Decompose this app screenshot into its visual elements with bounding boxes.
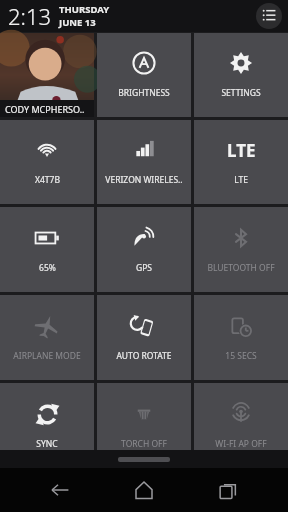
staticText: LTE — [227, 139, 256, 162]
staticText: SETTINGS — [221, 87, 261, 99]
button[interactable]: 15 SECS — [194, 295, 288, 380]
button[interactable]: Edit quick settings — [256, 3, 282, 29]
button[interactable]: WI-FI AP OFF — [194, 383, 288, 468]
button[interactable]: 65% — [0, 207, 94, 292]
button[interactable]: LTE — [194, 120, 288, 204]
button[interactable]: AUTO ROTATE — [97, 295, 191, 380]
staticText: AUTO ROTATE — [116, 350, 172, 362]
staticText: 15 SECS — [225, 350, 257, 362]
button[interactable]: BRIGHTNESS — [97, 33, 191, 117]
button[interactable]: VERIZON WIRELES.. — [97, 120, 191, 204]
staticText: TORCH OFF — [121, 438, 167, 450]
staticText: X4T7B — [35, 174, 60, 186]
staticText: BRIGHTNESS — [118, 87, 170, 99]
button[interactable]: TORCH OFF — [97, 383, 191, 468]
button[interactable]: GPS — [97, 207, 191, 292]
button[interactable]: SYNC — [0, 383, 94, 468]
staticText: LTE — [234, 174, 248, 186]
staticText: CODY MCPHERSO.. — [5, 103, 85, 115]
staticText: BLUETOOTH OFF — [207, 262, 275, 274]
button[interactable]: Recent apps — [204, 468, 252, 512]
staticText: AIRPLANE MODE — [13, 350, 81, 362]
staticText: WI-FI AP OFF — [215, 438, 267, 450]
staticText: GPS — [136, 262, 152, 274]
button[interactable]: X4T7B — [0, 120, 94, 204]
button[interactable]: Back — [36, 468, 84, 512]
button[interactable]: CODY MCPHERSO.. — [0, 33, 94, 117]
staticText: 65% — [39, 262, 56, 274]
staticText: 2:13 — [8, 1, 52, 31]
staticText: JUNE 13 — [59, 16, 96, 29]
staticText: VERIZON WIRELES.. — [105, 174, 183, 186]
staticText: THURSDAY — [59, 3, 110, 16]
button[interactable]: Home — [120, 468, 168, 512]
button[interactable]: AIRPLANE MODE — [0, 295, 94, 380]
button[interactable]: BLUETOOTH OFF — [194, 207, 288, 292]
staticText: SYNC — [36, 438, 58, 450]
button[interactable]: SETTINGS — [194, 33, 288, 117]
